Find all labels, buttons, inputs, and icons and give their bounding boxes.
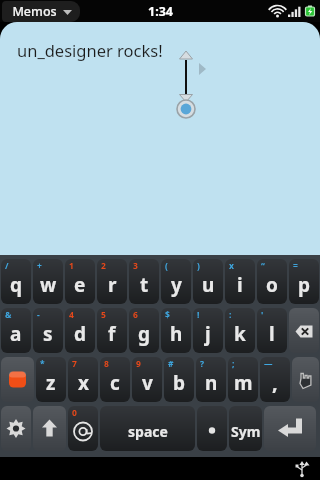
staticText: x: [229, 260, 234, 272]
staticText: a: [10, 321, 22, 347]
button[interactable]: ): [193, 259, 223, 304]
button[interactable]: $: [161, 308, 191, 353]
staticText: ?: [200, 358, 205, 370]
staticText: *: [40, 358, 45, 370]
staticText: d: [74, 321, 87, 347]
button[interactable]: Settings: [1, 406, 31, 451]
staticText: 9: [136, 358, 141, 370]
button[interactable]: At sign: [68, 406, 98, 451]
staticText: 4: [69, 309, 74, 321]
button[interactable]: Shift lock: [1, 357, 34, 402]
staticText: &: [5, 309, 12, 321]
staticText: Memos: [12, 3, 57, 20]
button[interactable]: /: [1, 259, 31, 304]
staticText: p: [298, 272, 311, 298]
staticText: +: [37, 260, 42, 272]
staticText: ;: [232, 358, 235, 370]
staticText: “: [261, 260, 265, 272]
staticText: =: [293, 260, 298, 272]
staticText: t: [140, 272, 149, 298]
staticText: i: [237, 272, 243, 298]
staticText: 1:34: [148, 3, 173, 20]
button[interactable]: 2: [97, 259, 127, 304]
staticText: (: [165, 260, 168, 272]
staticText: g: [138, 321, 151, 347]
button[interactable]: ;: [228, 357, 258, 402]
staticText: b: [173, 370, 186, 396]
button[interactable]: Backspace: [289, 308, 319, 353]
staticText: ': [261, 309, 264, 321]
staticText: 3: [133, 260, 138, 272]
button[interactable]: x: [225, 259, 255, 304]
button[interactable]: Shift: [33, 406, 66, 451]
staticText: 1: [69, 260, 74, 272]
staticText: un_designer rocks!: [17, 39, 163, 61]
staticText: Sym: [231, 422, 261, 441]
staticText: ,: [272, 369, 278, 396]
button[interactable]: “: [257, 259, 287, 304]
staticText: w: [40, 272, 57, 298]
staticText: 7: [72, 358, 77, 370]
staticText: #: [168, 358, 174, 370]
button[interactable]: un_designer rocks!: [0, 22, 320, 255]
staticText: /: [5, 260, 9, 272]
button[interactable]: 1: [65, 259, 95, 304]
button[interactable]: !: [193, 308, 223, 353]
staticText: f: [108, 321, 116, 347]
button[interactable]: 6: [129, 308, 159, 353]
button[interactable]: *: [36, 357, 66, 402]
button[interactable]: -: [33, 308, 63, 353]
button[interactable]: Enter: [264, 406, 316, 451]
staticText: k: [234, 321, 246, 347]
button[interactable]: &: [1, 308, 31, 353]
button[interactable]: 7: [68, 357, 98, 402]
staticText: j: [205, 321, 211, 347]
staticText: e: [74, 272, 86, 298]
staticText: space: [128, 422, 168, 441]
button[interactable]: Period: [197, 406, 227, 451]
button[interactable]: Memos: [2, 1, 80, 22]
staticText: l: [269, 321, 275, 347]
button[interactable]: Sym: [229, 406, 262, 451]
button[interactable]: 5: [97, 308, 127, 353]
staticText: s: [43, 321, 53, 347]
staticText: :: [229, 309, 232, 321]
staticText: m: [234, 370, 253, 396]
staticText: c: [110, 370, 120, 396]
button[interactable]: 3: [129, 259, 159, 304]
staticText: z: [46, 370, 56, 396]
button[interactable]: —: [260, 357, 290, 402]
staticText: q: [10, 272, 23, 298]
staticText: o: [266, 272, 278, 298]
button[interactable]: (: [161, 259, 191, 304]
other: USB connected: [296, 461, 308, 477]
staticText: y: [171, 272, 182, 298]
button[interactable]: 4: [65, 308, 95, 353]
button[interactable]: =: [289, 259, 319, 304]
staticText: n: [205, 370, 218, 396]
button[interactable]: :: [225, 308, 255, 353]
staticText: !: [197, 309, 200, 321]
staticText: v: [142, 370, 153, 396]
staticText: u: [202, 272, 215, 298]
staticText: 8: [104, 358, 109, 370]
button[interactable]: ': [257, 308, 287, 353]
staticText: h: [170, 321, 183, 347]
staticText: r: [108, 272, 117, 298]
staticText: -: [37, 309, 40, 321]
button[interactable]: 9: [132, 357, 162, 402]
staticText: ): [197, 260, 200, 272]
button[interactable]: #: [164, 357, 194, 402]
button[interactable]: 8: [100, 357, 130, 402]
button[interactable]: +: [33, 259, 63, 304]
staticText: $: [165, 309, 170, 321]
staticText: 2: [101, 260, 106, 272]
staticText: 6: [133, 309, 138, 321]
button[interactable]: Pointer: [292, 357, 319, 402]
staticText: 5: [101, 309, 106, 321]
staticText: x: [78, 370, 89, 396]
staticText: —: [264, 358, 273, 370]
staticText: 0: [72, 407, 77, 419]
button[interactable]: space: [100, 406, 195, 451]
button[interactable]: ?: [196, 357, 226, 402]
